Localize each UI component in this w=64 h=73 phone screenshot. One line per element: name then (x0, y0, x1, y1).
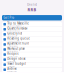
staticText: 5 notes · last week (7, 45, 18, 47)
staticText: 18 notes · 12 Mar (7, 55, 18, 57)
staticText: RRB (27, 7, 36, 12)
staticText: Trip to Marseille (7, 22, 29, 25)
staticText: 3 notes · last week (7, 50, 18, 52)
staticText: 2 notes · yesterday (7, 30, 20, 32)
button[interactable]: Archive (2, 67, 62, 72)
button[interactable]: Quarterly review (2, 27, 62, 32)
staticText: Design ideas (7, 57, 25, 60)
staticText: Onelist (27, 3, 37, 6)
staticText: Reading queue (7, 37, 30, 40)
button[interactable]: Reading queue (2, 37, 62, 42)
staticText: Apartment hunt (7, 42, 29, 45)
button[interactable]: Apartment hunt (2, 42, 62, 47)
staticText: Travel budget (7, 62, 26, 65)
staticText: 4 notes · updated today (7, 25, 22, 27)
button[interactable]: Design ideas (2, 57, 62, 62)
staticText: Get Pro (4, 16, 15, 19)
button[interactable]: Workout plan (2, 47, 62, 52)
staticText: Archive (7, 67, 17, 70)
button[interactable]: Travel budget (2, 62, 62, 67)
button[interactable]: Get Pro (2, 15, 62, 20)
staticText: Recipes (7, 52, 18, 55)
staticText: 1 note · 4 Mar (7, 65, 15, 67)
button[interactable]: Trip to Marseille (2, 22, 62, 27)
staticText: 9 items · Monday (7, 35, 17, 37)
staticText: 34 notes · 1 Mar (7, 71, 17, 72)
staticText: 12 books · Sunday (7, 40, 20, 42)
button[interactable]: Recipes (2, 52, 62, 57)
staticText: Grocery list (7, 32, 22, 35)
button[interactable]: Grocery list (2, 32, 62, 37)
staticText: Workout plan (7, 47, 25, 50)
staticText: 7 notes · 9 Mar (7, 60, 16, 62)
staticText: Quarterly review (7, 27, 27, 30)
